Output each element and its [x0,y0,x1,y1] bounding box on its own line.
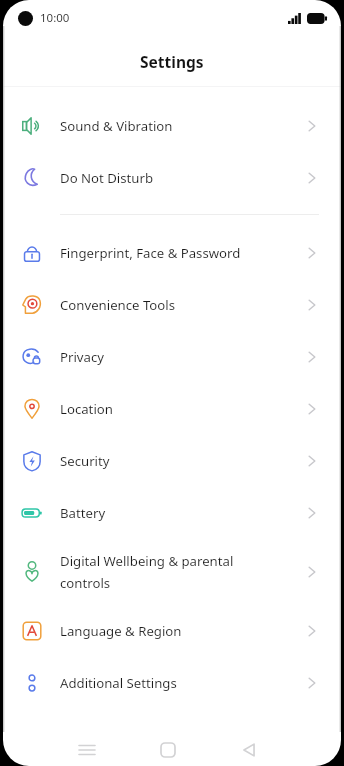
staticText: 10:00 [40,10,70,26]
staticText: Digital Wellbeing & parental [60,552,234,570]
button[interactable]: Convenience Tools [3,279,341,331]
button[interactable]: Do Not Disturb [3,152,341,204]
staticText: Battery [60,504,106,522]
button[interactable]: Recent apps [65,733,109,766]
button[interactable]: Home [146,733,190,766]
button[interactable]: Additional Settings [3,657,341,709]
staticText: Sound & Vibration [60,117,173,135]
staticText: Additional Settings [60,674,177,692]
button[interactable]: Privacy [3,331,341,383]
staticText: Location [60,400,113,418]
staticText: Do Not Disturb [60,169,154,187]
staticText: Security [60,452,110,470]
button[interactable]: Digital Wellbeing & parental [3,539,341,605]
button[interactable]: Battery [3,487,341,539]
button[interactable]: Location [3,383,341,435]
button[interactable]: Fingerprint, Face & Password [3,227,341,279]
button[interactable]: Security [3,435,341,487]
button[interactable]: Sound & Vibration [3,100,341,152]
button[interactable]: Back [227,733,271,766]
button[interactable]: Language & Region [3,605,341,657]
staticText: Settings [140,51,204,72]
staticText: Privacy [60,348,104,366]
staticText: Convenience Tools [60,296,176,314]
staticText: Fingerprint, Face & Password [60,244,241,262]
staticText: controls [60,574,111,592]
staticText: Language & Region [60,622,182,640]
